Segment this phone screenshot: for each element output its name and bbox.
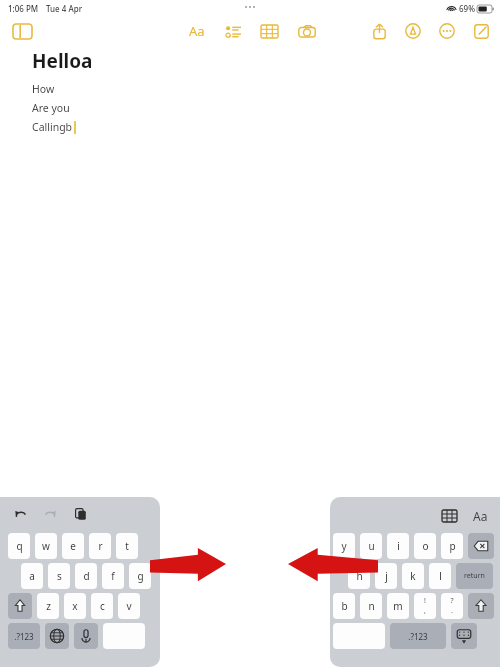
button[interactable]: .?123 (390, 623, 446, 649)
button[interactable]: r (89, 533, 111, 559)
staticText: .?123 (14, 631, 34, 642)
staticText: m (393, 599, 403, 613)
button[interactable]: i (387, 533, 409, 559)
button[interactable]: Camera (292, 16, 322, 46)
staticText: ! , (424, 596, 426, 616)
button[interactable]: return (456, 563, 493, 589)
button[interactable]: Space (103, 623, 145, 649)
button[interactable]: Backspace (468, 533, 494, 559)
staticText: .?123 (408, 631, 428, 642)
button[interactable]: Shift (8, 593, 32, 619)
button[interactable]: e (62, 533, 84, 559)
staticText: s (57, 569, 62, 583)
button[interactable]: Undo (10, 504, 30, 524)
staticText: c (100, 599, 105, 613)
staticText: Are you (32, 101, 70, 115)
staticText: k (410, 569, 416, 583)
button[interactable]: z (37, 593, 59, 619)
staticText: p (449, 539, 456, 553)
staticText: q (16, 539, 23, 553)
button[interactable]: l (429, 563, 451, 589)
button[interactable]: New note (466, 16, 496, 46)
button[interactable]: m (387, 593, 409, 619)
button[interactable]: c (91, 593, 113, 619)
button[interactable]: q (8, 533, 30, 559)
button[interactable]: u (360, 533, 382, 559)
button[interactable]: k (402, 563, 424, 589)
staticText: v (126, 599, 132, 613)
button[interactable]: y (333, 533, 355, 559)
button[interactable]: w (35, 533, 57, 559)
button[interactable]: n (360, 593, 382, 619)
staticText: 1:06 PM (8, 3, 39, 14)
button[interactable]: ? . (441, 593, 463, 619)
button[interactable]: x (64, 593, 86, 619)
staticText: r (98, 539, 103, 553)
staticText: ? . (450, 596, 454, 616)
button[interactable]: Change keyboard (45, 623, 69, 649)
button[interactable]: j (375, 563, 397, 589)
staticText: l (439, 569, 442, 583)
button[interactable]: g (129, 563, 151, 589)
staticText: Callingb (32, 120, 73, 134)
staticText: x (72, 599, 78, 613)
staticText: Helloa (32, 48, 93, 74)
staticText: t (125, 539, 129, 553)
button[interactable]: t (116, 533, 138, 559)
staticText: Aa (189, 22, 205, 40)
button[interactable]: Hide keyboard (451, 623, 477, 649)
button[interactable]: Redo (40, 504, 60, 524)
button[interactable]: Format (468, 504, 492, 528)
staticText: w (42, 539, 50, 553)
button[interactable]: Markup (398, 16, 428, 46)
button[interactable]: Dictate (74, 623, 98, 649)
staticText: How (32, 82, 55, 96)
staticText: a (29, 569, 35, 583)
button[interactable]: d (75, 563, 97, 589)
staticText: j (385, 569, 388, 583)
button[interactable]: o (414, 533, 436, 559)
staticText: Tue 4 Apr (46, 3, 83, 14)
button[interactable]: v (118, 593, 140, 619)
staticText: 69% (459, 3, 475, 14)
button[interactable]: s (48, 563, 70, 589)
button[interactable]: Checklist (218, 16, 248, 46)
staticText: y (341, 539, 347, 553)
button[interactable]: f (102, 563, 124, 589)
button[interactable]: Format (182, 16, 212, 46)
staticText: d (83, 569, 90, 583)
button[interactable]: b (333, 593, 355, 619)
staticText: e (70, 539, 76, 553)
button[interactable]: Share (364, 16, 394, 46)
button[interactable]: ! , (414, 593, 436, 619)
staticText: n (368, 599, 375, 613)
button[interactable]: Table (254, 16, 284, 46)
staticText: Aa (473, 508, 488, 524)
staticText: u (368, 539, 375, 553)
button[interactable]: Shift (468, 593, 494, 619)
button[interactable]: Sidebar (8, 17, 36, 45)
staticText: o (422, 539, 429, 553)
button[interactable]: Space (333, 623, 385, 649)
staticText: b (341, 599, 348, 613)
button[interactable]: .?123 (8, 623, 40, 649)
button[interactable]: More (432, 16, 462, 46)
button[interactable]: p (441, 533, 463, 559)
button[interactable]: h (348, 563, 370, 589)
button[interactable]: Paste (70, 504, 90, 524)
staticText: g (137, 569, 144, 583)
staticText: i (397, 539, 400, 553)
button[interactable]: a (21, 563, 43, 589)
staticText: z (46, 599, 51, 613)
staticText: h (356, 569, 363, 583)
button[interactable]: Table (438, 505, 460, 527)
staticText: f (111, 569, 115, 583)
staticText: return (464, 571, 485, 581)
